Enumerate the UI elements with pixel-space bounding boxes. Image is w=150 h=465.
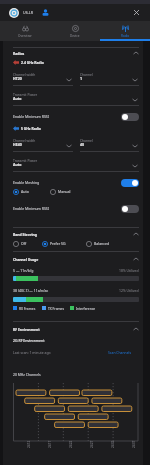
staticText: 2437 <box>132 440 136 448</box>
button[interactable]: 2.4 GHz Radio <box>13 59 139 66</box>
staticText: RF Environment <box>13 327 40 332</box>
button[interactable]: Radio <box>100 21 150 41</box>
button[interactable]: Overview <box>0 21 50 41</box>
staticText: 2417 <box>48 440 52 448</box>
staticText: Transmit Power <box>13 158 38 162</box>
button[interactable]: Close <box>125 4 147 21</box>
staticText: Balanced <box>94 241 110 246</box>
staticText: RX Frames <box>19 306 36 310</box>
staticText: Channel Usage <box>13 257 39 262</box>
staticText: Band Steering <box>13 232 37 237</box>
staticText: Channel width <box>13 72 36 76</box>
staticText: 40 <box>80 142 85 147</box>
button[interactable]: RF Environment <box>13 325 139 333</box>
button[interactable]: Auto <box>13 188 29 195</box>
staticText: Off <box>21 241 27 246</box>
button[interactable]: Manual <box>50 188 71 195</box>
staticText: Channel <box>80 72 93 76</box>
staticText: HT20 <box>13 76 22 81</box>
staticText: 18% Utilized <box>119 268 139 273</box>
staticText: 1 <box>80 76 83 81</box>
staticText: Radio <box>121 34 130 38</box>
staticText: Interference <box>76 306 96 310</box>
staticText: Prefer 5G <box>50 241 66 246</box>
staticText: Last scan: 1 minute ago <box>13 350 51 355</box>
staticText: Auto <box>13 96 22 101</box>
staticText: 5 — 11n/b/g <box>13 268 34 273</box>
staticText: U6-LR <box>23 10 33 15</box>
staticText: 2412 <box>27 440 31 448</box>
button[interactable]: 5 GHz Radio <box>13 125 139 132</box>
staticText: 2427 <box>90 440 94 448</box>
staticText: 5 GHz Radio <box>21 126 41 131</box>
button[interactable]: Channel Usage <box>13 255 139 263</box>
staticText: 2.4 GHz Radio <box>21 60 44 65</box>
staticText: Auto <box>21 189 29 194</box>
button[interactable]: Enable Meshing <box>13 178 139 187</box>
staticText: Channel <box>80 138 93 142</box>
staticText: Auto <box>13 162 22 167</box>
button[interactable]: Device <box>50 21 100 41</box>
staticText: Transmit Power <box>13 92 38 96</box>
staticText: Scan Channels <box>108 350 132 355</box>
button[interactable]: Off <box>13 240 27 247</box>
staticText: 12% Utilized <box>119 288 139 293</box>
staticText: 38 (40/-1) — 11a/n/ac <box>13 288 49 293</box>
staticText: 20 MHz Channels <box>13 372 41 377</box>
button[interactable]: Prefer 5G <box>42 240 66 247</box>
button[interactable]: Scan Channels <box>108 350 132 355</box>
staticText: 2432 <box>111 440 115 448</box>
staticText: 2G RF Environment <box>13 338 45 343</box>
staticText: 2422 <box>69 440 73 448</box>
staticText: Enable Minimum RSSI <box>13 114 49 119</box>
staticText: HE40 <box>13 142 22 147</box>
button[interactable]: Enable Minimum RSSI <box>13 204 139 213</box>
staticText: Manual <box>58 189 71 194</box>
button[interactable]: Balanced <box>86 240 110 247</box>
staticText: Channel width <box>13 138 36 142</box>
staticText: TX Frames <box>48 306 64 310</box>
staticText: Overview <box>18 34 32 38</box>
staticText: Radios <box>13 51 25 56</box>
button[interactable]: Radios <box>13 49 139 57</box>
staticText: Enable Meshing <box>13 180 40 185</box>
button[interactable]: Enable Minimum RSSI <box>13 112 139 121</box>
button[interactable]: Band Steering <box>13 230 139 238</box>
staticText: Device <box>70 34 80 38</box>
staticText: Enable Minimum RSSI <box>13 206 49 211</box>
